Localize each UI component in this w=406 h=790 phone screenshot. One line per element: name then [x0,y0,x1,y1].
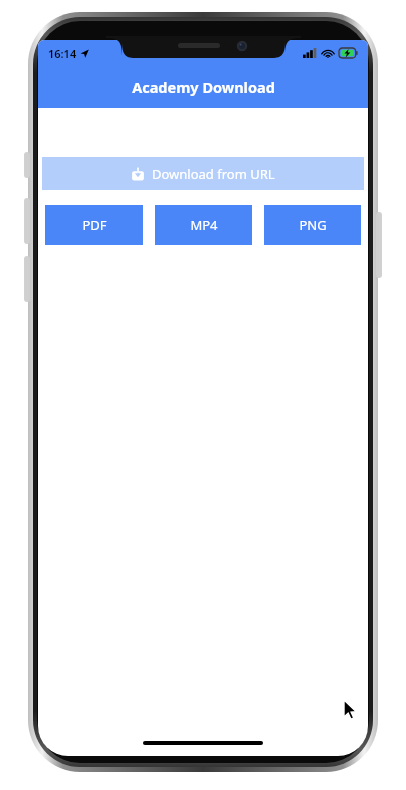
button[interactable]: PNG [264,205,361,245]
button[interactable]: MP4 [155,205,252,245]
staticText: PNG [299,216,327,234]
staticText: MP4 [190,216,218,234]
button[interactable]: PDF [45,205,143,245]
staticText: Academy Download [132,77,275,97]
staticText: 16:14 [48,46,77,61]
staticText: PDF [82,216,107,234]
staticText: Download from URL [152,165,275,183]
button[interactable]: Download from URL [42,157,364,190]
